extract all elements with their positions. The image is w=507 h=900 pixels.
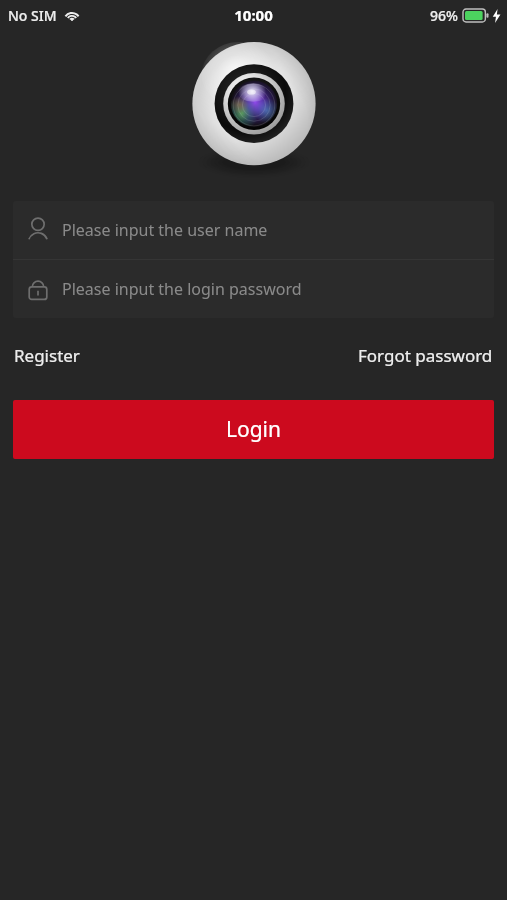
staticText: 10:00: [234, 5, 273, 25]
staticText: 96%: [430, 6, 458, 25]
staticText: Please input the user name: [62, 219, 268, 241]
button[interactable]: Password: [13, 260, 494, 318]
button[interactable]: Register: [13, 340, 81, 371]
staticText: No SIM: [8, 6, 57, 25]
staticText: Forgot password: [358, 344, 493, 367]
button[interactable]: Forgot password: [357, 340, 494, 371]
other: Password: [27, 276, 49, 302]
button[interactable]: User name: [13, 201, 494, 259]
button[interactable]: Login: [13, 400, 494, 459]
other: User name: [27, 217, 49, 243]
staticText: Login: [226, 415, 282, 444]
staticText: Please input the login password: [62, 278, 302, 300]
staticText: Register: [14, 344, 80, 367]
